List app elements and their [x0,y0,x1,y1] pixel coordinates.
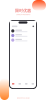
staticText: 感谢你的支持与关注 · 用心服务 [16,97,29,99]
staticText: 全新体验 · 立即下载使用 · 免费试用 [16,14,30,15]
staticText: 限时优惠 [15,8,31,13]
